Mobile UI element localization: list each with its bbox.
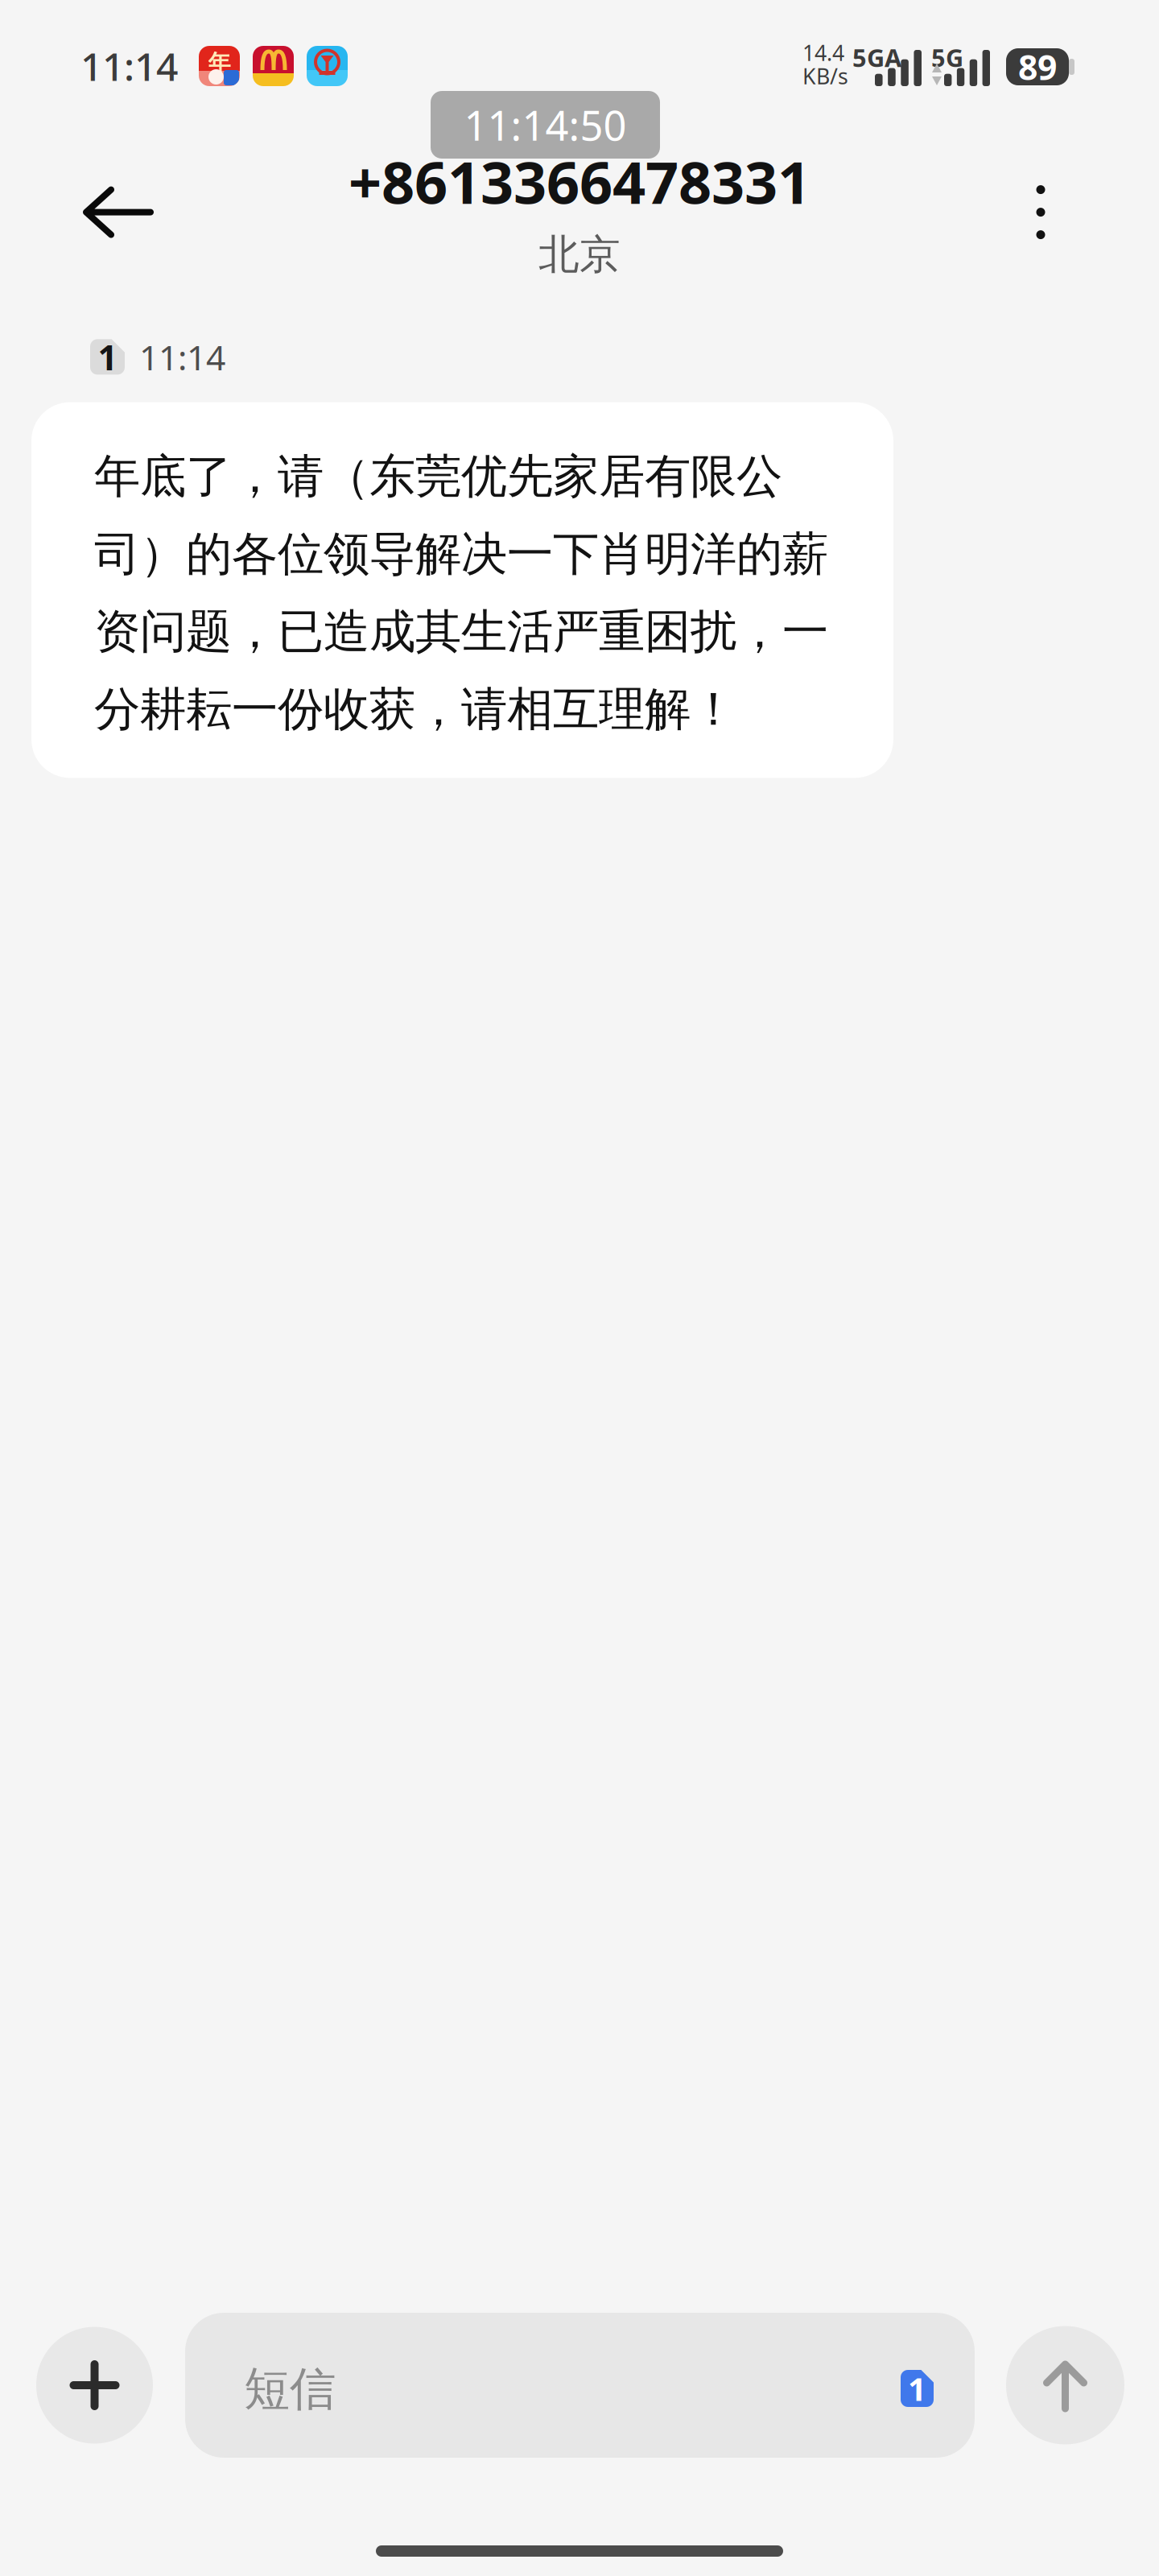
staticText: 14.4 — [802, 38, 844, 67]
button[interactable]: 短信 — [185, 2313, 975, 2458]
button[interactable]: Send — [1006, 2313, 1124, 2458]
staticText: 1 — [908, 2367, 926, 2410]
staticText: 89 — [1018, 44, 1057, 90]
staticText: 11:14 — [80, 40, 178, 92]
staticText: 1 — [98, 334, 117, 380]
button[interactable]: Back — [66, 160, 171, 265]
staticText: +8613366478331 — [349, 143, 810, 220]
staticText: 5GA — [852, 41, 901, 74]
staticText: 11:14 — [139, 334, 225, 380]
staticText: 年底了，请（东莞优先家居有限公司）的各位领导解决一下肖明洋的薪资问题，已造成其生… — [94, 448, 828, 738]
button[interactable]: More options — [992, 160, 1089, 265]
staticText: 5G — [931, 41, 963, 74]
staticText: KB/s — [802, 62, 848, 90]
staticText: 11:14:50 — [464, 98, 627, 152]
staticText: 年 — [208, 49, 231, 77]
staticText: 北京 — [538, 230, 621, 280]
button[interactable]: Add attachment — [36, 2313, 153, 2458]
staticText: 短信 — [244, 2361, 336, 2418]
